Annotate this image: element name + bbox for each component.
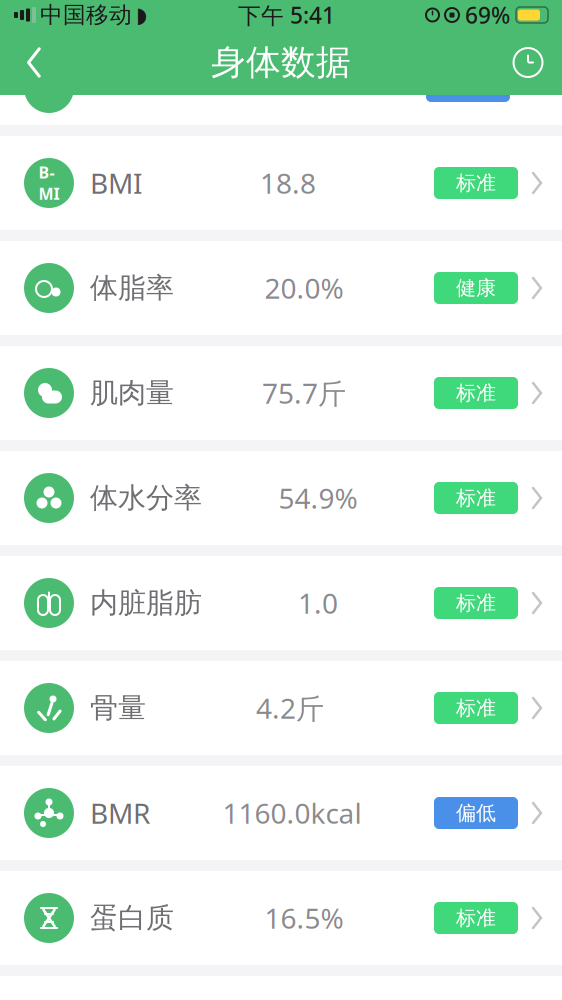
button[interactable]: 体水分率 bbox=[0, 451, 562, 545]
staticText: BMI bbox=[90, 164, 142, 202]
staticText: 内脏脂肪 bbox=[90, 586, 202, 620]
staticText: 标准 bbox=[456, 591, 496, 615]
staticText: 69% bbox=[465, 0, 510, 30]
staticText: 健康 bbox=[456, 276, 496, 300]
staticText: 18.8 bbox=[260, 164, 316, 202]
staticText: 54.9% bbox=[278, 479, 357, 517]
staticText: 中国移动 bbox=[40, 1, 132, 29]
staticText: 1.0 bbox=[298, 584, 338, 622]
staticText: 75.7斤 bbox=[262, 374, 346, 412]
staticText: 偏低 bbox=[456, 801, 496, 825]
button[interactable]: 肌肉量 bbox=[0, 346, 562, 440]
staticText: 蛋白质 bbox=[90, 901, 174, 935]
button[interactable]: 内脏脂肪 bbox=[0, 556, 562, 650]
staticText: 标准 bbox=[456, 696, 496, 720]
staticText: 16.5% bbox=[264, 899, 343, 937]
button[interactable]: 历史记录 bbox=[500, 30, 556, 94]
button[interactable]: 蛋白质 bbox=[0, 871, 562, 965]
staticText: 肌肉量 bbox=[90, 376, 174, 410]
button[interactable]: BMR bbox=[0, 766, 562, 860]
staticText: 下午 5:41 bbox=[238, 0, 335, 30]
staticText: 4.2斤 bbox=[256, 689, 324, 727]
staticText: 20.0% bbox=[264, 269, 343, 307]
button[interactable]: 骨量 bbox=[0, 661, 562, 755]
staticText: 标准 bbox=[456, 171, 496, 195]
staticText: 标准 bbox=[456, 381, 496, 405]
staticText: BMR bbox=[90, 794, 150, 832]
staticText: ◗ bbox=[136, 3, 147, 27]
button[interactable]: 返回 bbox=[6, 30, 62, 94]
staticText: 身体数据 bbox=[211, 41, 351, 84]
staticText: 体水分率 bbox=[90, 481, 202, 515]
staticText: 1160.0kcal bbox=[222, 794, 361, 832]
button[interactable] bbox=[0, 95, 562, 125]
staticText: BMI bbox=[38, 162, 59, 204]
button[interactable]: BMI bbox=[0, 136, 562, 230]
staticText: 体脂率 bbox=[90, 271, 174, 305]
staticText: 骨量 bbox=[90, 691, 146, 725]
button[interactable]: 体脂率 bbox=[0, 241, 562, 335]
staticText: 标准 bbox=[456, 486, 496, 510]
staticText: 标准 bbox=[456, 906, 496, 930]
